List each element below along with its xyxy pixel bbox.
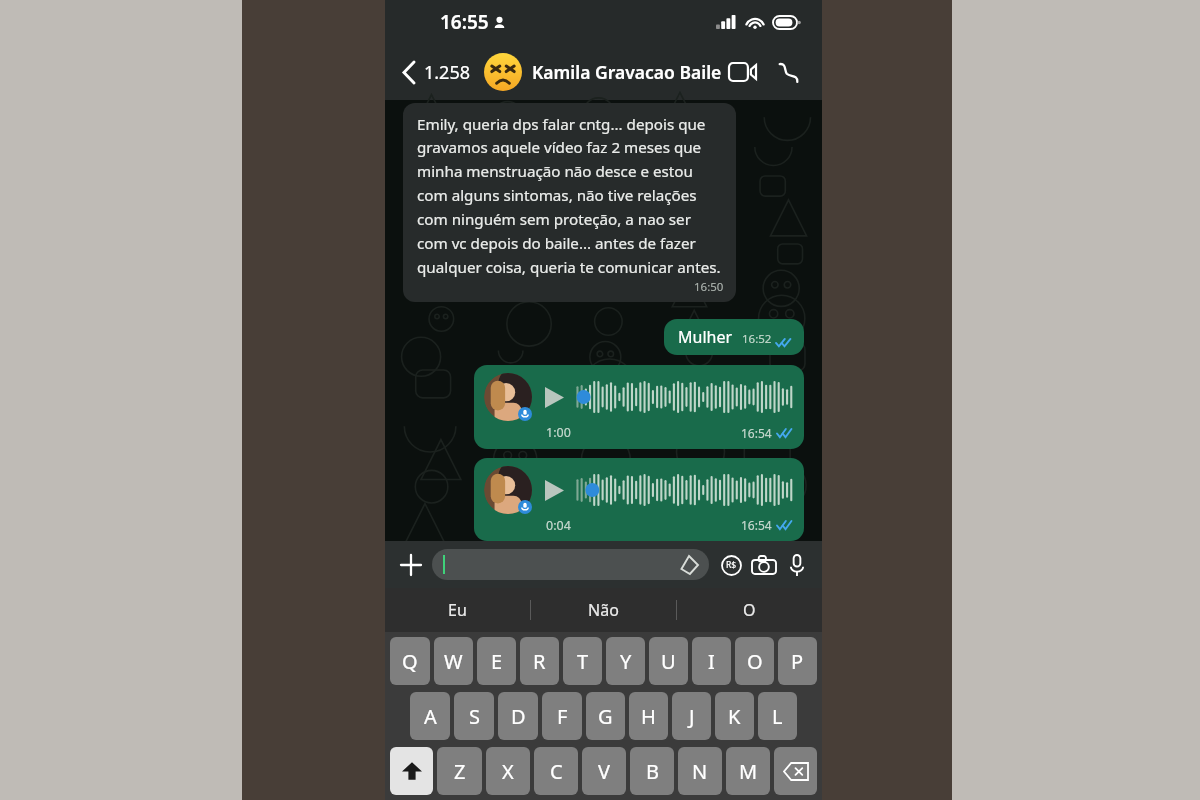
staticText: H [641,703,656,730]
button[interactable]: D [498,692,538,740]
staticText: D [511,703,526,730]
staticText: 1.258 [424,60,471,85]
staticText: 16:52 [742,331,772,347]
staticText: O [743,599,756,621]
staticText: S [469,703,480,730]
button[interactable]: Payments [715,549,747,581]
button[interactable]: Não [531,588,676,632]
button[interactable]: Kamila Gravacao Baile [483,52,722,92]
button[interactable]: Play [474,365,804,449]
staticText: 1:00 [546,424,571,441]
button[interactable]: F [542,692,582,740]
button[interactable]: S [454,692,494,740]
button[interactable]: M [726,747,770,795]
button[interactable]: H [629,692,668,740]
button[interactable]: Z [437,747,482,795]
staticText: P [791,648,804,675]
staticText: X [502,758,514,785]
button[interactable]: O [677,588,822,632]
button[interactable]: E [477,637,516,685]
staticText: 16:50 [694,279,724,295]
button[interactable]: V [582,747,626,795]
button[interactable]: Eu [385,588,530,632]
other: Back [403,62,415,83]
staticText: K [728,703,741,730]
button[interactable]: Emily, queria dps falar cntg... depois q… [403,103,736,302]
button[interactable]: Voice call [768,52,808,92]
button[interactable]: U [649,637,688,685]
staticText: A [424,703,437,730]
staticText: Y [620,648,632,675]
staticText: Z [454,758,466,785]
other: Sticker [680,556,698,574]
button[interactable]: N [678,747,722,795]
staticText: U [661,648,676,675]
staticText: Não [588,599,619,621]
staticText: O [747,648,763,675]
staticText: V [598,758,610,785]
button[interactable]: L [758,692,797,740]
button[interactable]: Y [606,637,645,685]
button[interactable]: Back [401,54,473,91]
other: Play [545,387,564,408]
staticText: 0:04 [546,517,571,533]
button[interactable]: Camera [747,548,781,582]
staticText: J [689,703,695,730]
staticText: 16:54 [741,517,772,533]
button[interactable]: B [630,747,674,795]
button[interactable]: G [586,692,625,740]
button[interactable]: Mulher [664,319,804,355]
button[interactable]: C [534,747,578,795]
staticText: W [444,648,463,675]
staticText: Eu [448,599,467,621]
button[interactable]: K [715,692,754,740]
other: Play [545,480,564,501]
button[interactable]: Q [390,637,430,685]
staticText: R [533,648,546,675]
button[interactable]: Attach [394,548,428,582]
button[interactable]: Video call [722,52,762,92]
button[interactable]: I [692,637,731,685]
button[interactable]: Play [474,458,804,541]
staticText: Kamila Gravacao Baile [532,60,722,84]
staticText: B [646,758,659,785]
staticText: M [739,758,758,785]
staticText: Q [402,648,418,675]
button[interactable]: T [563,637,602,685]
staticText: C [550,758,563,785]
staticText: T [577,648,589,675]
staticText: I [708,648,715,675]
staticText: L [772,703,783,730]
staticText: Emily, queria dps falar cntg... depois q… [417,114,724,278]
button[interactable]: Backspace [774,747,817,795]
staticText: F [557,703,568,730]
staticText: 16:55 [440,9,489,35]
staticText: E [491,648,503,675]
button[interactable]: Sticker [432,549,709,580]
button[interactable]: X [486,747,530,795]
button[interactable]: Shift [390,747,433,795]
button[interactable]: A [410,692,450,740]
button[interactable]: J [672,692,711,740]
button[interactable]: W [434,637,473,685]
button[interactable]: O [735,637,774,685]
button[interactable]: R [520,637,559,685]
button[interactable]: Voice message [781,549,813,581]
staticText: 16:54 [741,425,772,441]
staticText: G [598,703,613,730]
staticText: N [692,758,708,785]
button[interactable]: P [778,637,817,685]
staticText: Mulher [678,326,733,348]
staticText: R$ [726,559,737,571]
